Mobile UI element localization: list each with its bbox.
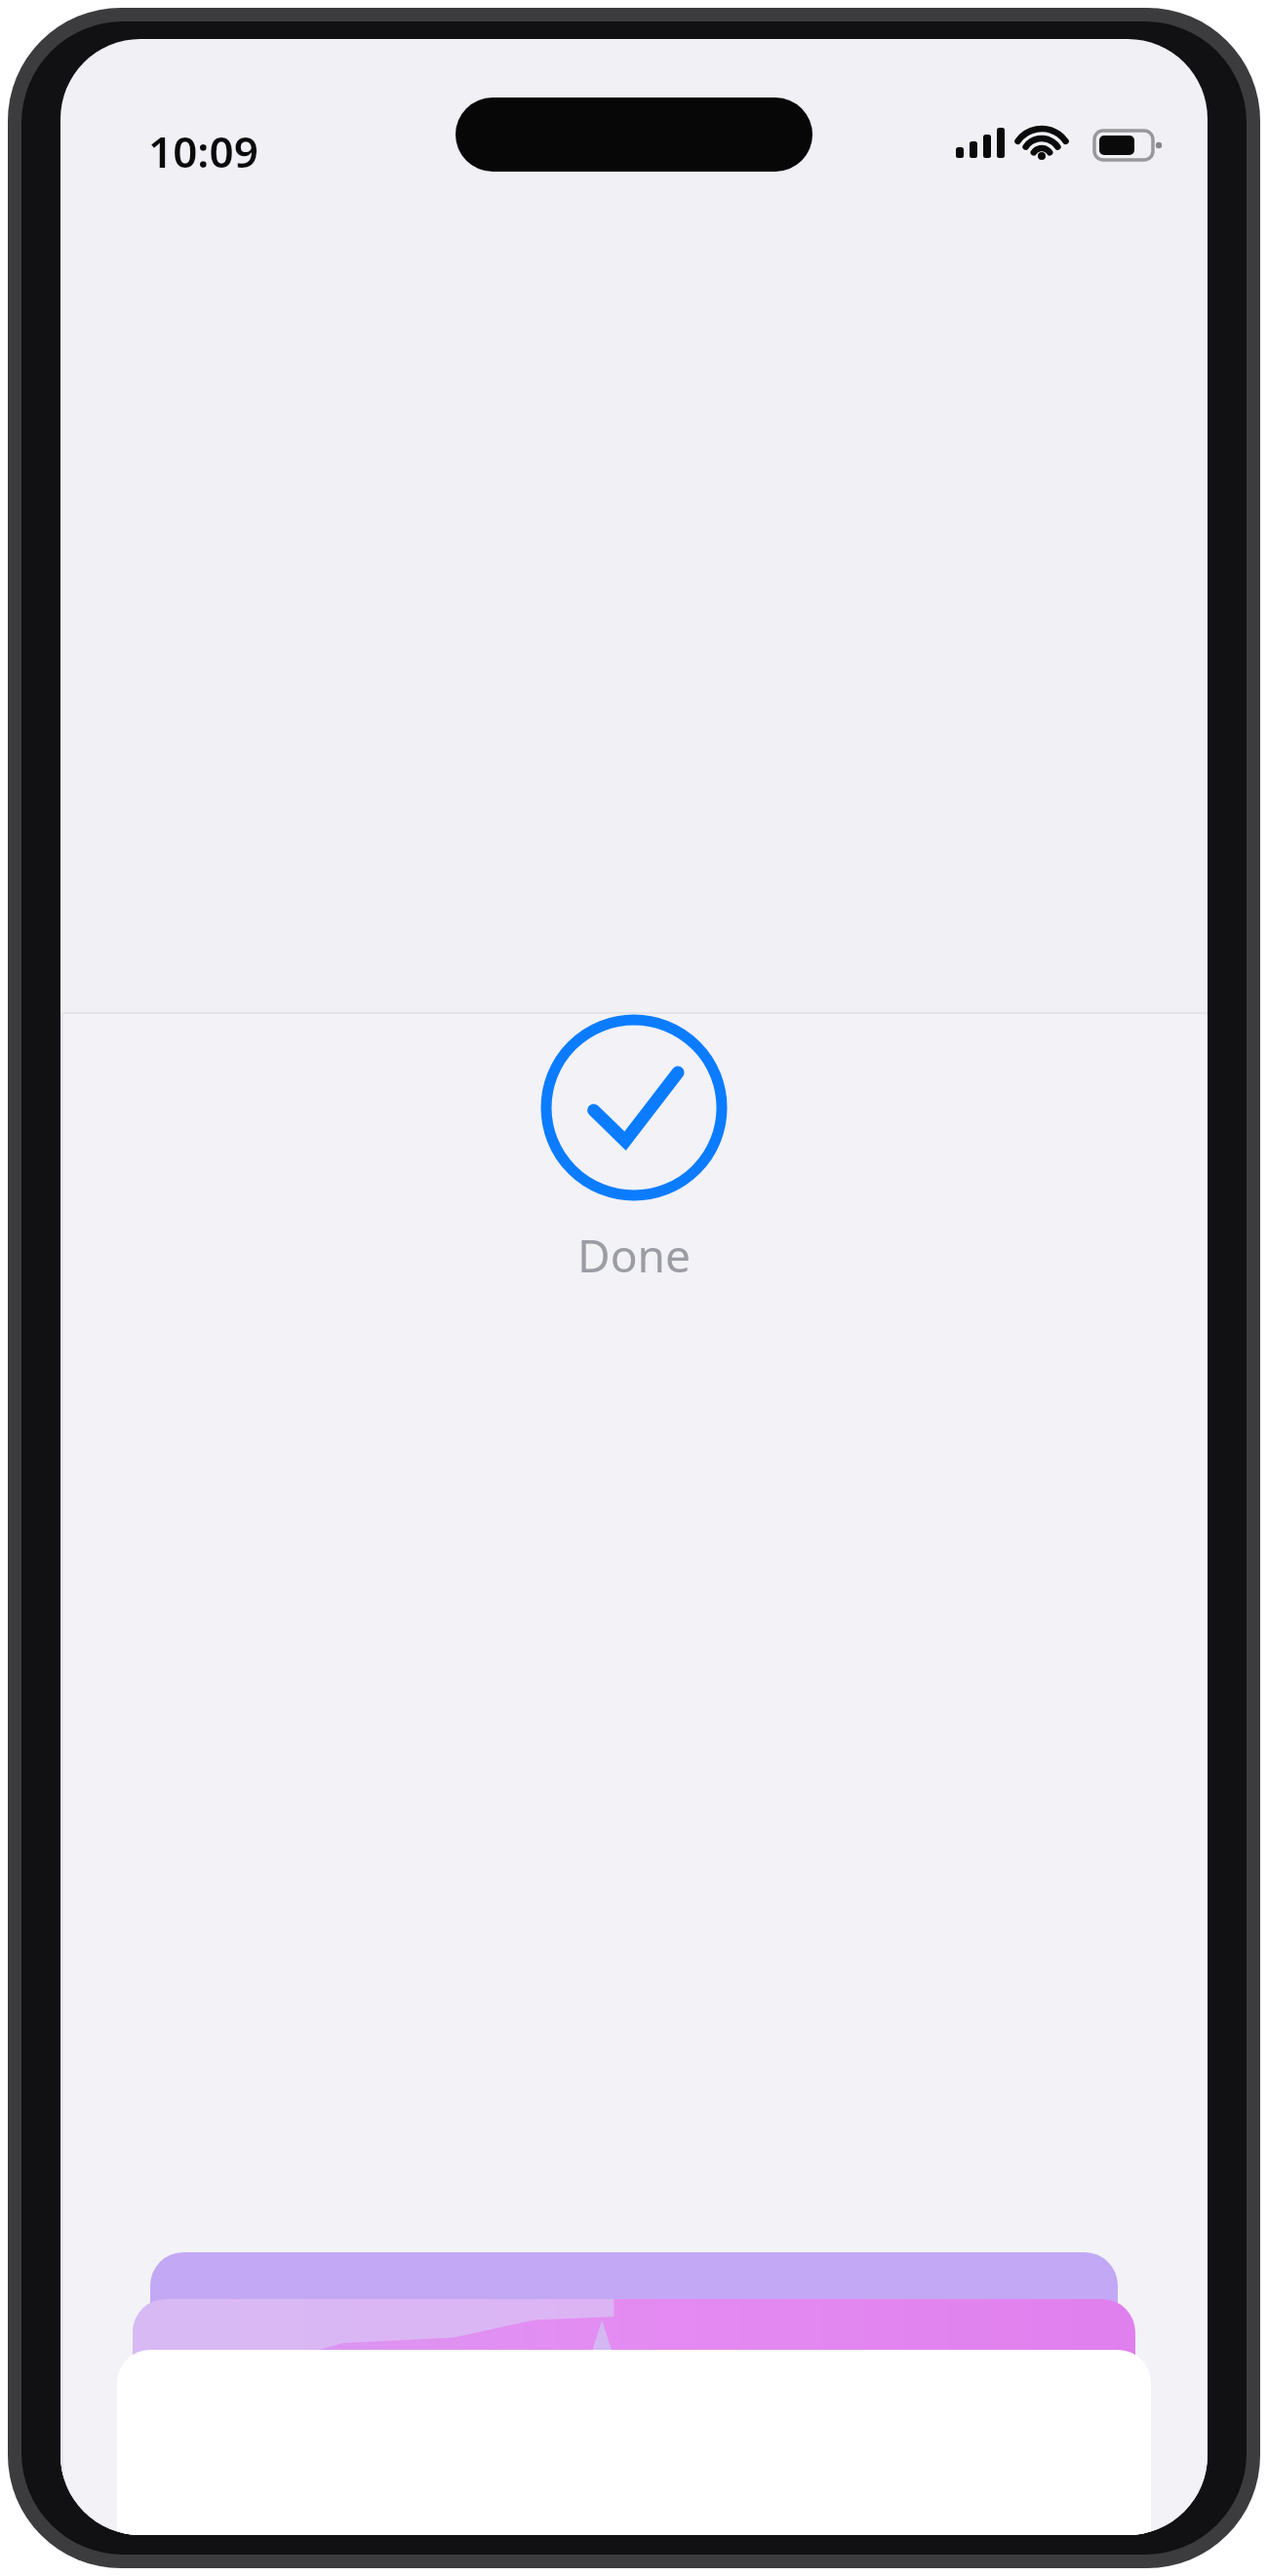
staticText: 10:09 [148, 122, 258, 180]
staticText: Done [577, 1225, 691, 1286]
button[interactable]: Done [540, 1014, 728, 1201]
button[interactable] [133, 2299, 1135, 2475]
button[interactable] [117, 2350, 1151, 2535]
button[interactable] [150, 2252, 1118, 2467]
